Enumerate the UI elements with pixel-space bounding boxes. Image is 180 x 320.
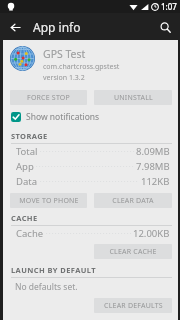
button[interactable]: Search [155,17,175,37]
staticText: com.chartcross.gpstest [43,62,120,72]
staticText: LAUNCH BY DEFAULT [11,265,96,275]
staticText: Total [16,145,38,158]
button[interactable]: CLEAR CACHE [94,244,172,259]
staticText: CLEAR CACHE [109,247,157,257]
button[interactable]: Show notifications [11,111,178,123]
staticText: CLEAR DEFAULTS [104,301,163,311]
staticText: Show notifications [26,111,100,123]
staticText: version 1.3.2 [43,73,85,83]
staticText: Cache [16,227,44,240]
staticText: MOVE TO PHONE [19,196,79,206]
staticText: Data [16,175,38,188]
staticText: STORAGE [11,131,48,141]
staticText: UNINSTALL [114,93,153,103]
staticText: 8.09MB [136,145,170,158]
button[interactable]: CLEAR DEFAULTS [94,298,172,313]
staticText: App [16,160,34,173]
staticText: FORCE STOP [27,93,70,103]
button[interactable]: MOVE TO PHONE [10,193,87,208]
button[interactable]: FORCE STOP [10,90,87,105]
staticText: App info [33,19,81,35]
staticText: 12.00KB [133,227,170,240]
staticText: CLEAR DATA [112,196,154,206]
staticText: No defaults set. [15,281,78,293]
button[interactable]: Back [5,17,25,37]
button[interactable]: CLEAR DATA [94,193,172,208]
staticText: GPS Test [43,47,86,61]
staticText: 7.98MB [136,160,170,173]
staticText: 112KB [141,175,170,188]
button[interactable]: UNINSTALL [94,90,172,105]
staticText: CACHE [11,213,38,223]
staticText: 1:07 [161,1,177,12]
